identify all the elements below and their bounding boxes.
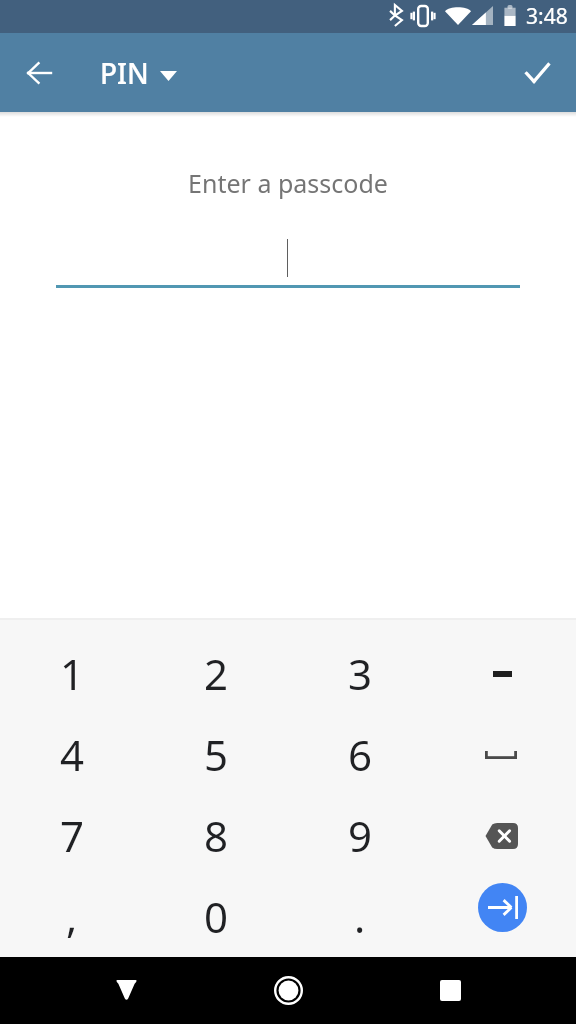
staticText: 5 [204,726,229,783]
staticText: 7 [60,807,85,864]
button[interactable]: PIN [92,45,185,101]
staticText: . [354,888,366,945]
staticText: , [66,888,78,945]
button[interactable]: 7 [0,795,144,876]
button[interactable]: 0 [144,876,288,957]
staticText: 8 [204,807,229,864]
button[interactable]: Space [432,714,576,795]
button[interactable]: 2 [144,633,288,714]
staticText: 6 [348,726,373,783]
staticText: 3:48 [526,2,568,31]
button[interactable]: Backspace [432,795,576,876]
button[interactable]: 8 [144,795,288,876]
button[interactable]: Home [260,962,316,1018]
button[interactable]: Dash [432,633,576,714]
staticText: Enter a passcode [0,166,576,200]
button[interactable]: 4 [0,714,144,795]
staticText: 0 [204,888,229,945]
staticText: 3 [348,645,373,702]
button[interactable]: 9 [288,795,432,876]
button[interactable]: , [0,876,144,957]
button[interactable]: Recents [422,962,478,1018]
staticText: 9 [348,807,373,864]
staticText: 1 [60,645,85,702]
button[interactable]: 5 [144,714,288,795]
staticText: 2 [204,645,229,702]
button[interactable]: Back [11,45,67,101]
button[interactable]: 1 [0,633,144,714]
button[interactable]: . [288,876,432,957]
button[interactable]: Confirm [509,45,565,101]
button[interactable]: Back [98,962,154,1018]
button[interactable]: Enter [432,876,576,957]
staticText: 4 [60,726,85,783]
button[interactable]: 3 [288,633,432,714]
staticText: PIN [100,54,149,92]
button[interactable]: 6 [288,714,432,795]
